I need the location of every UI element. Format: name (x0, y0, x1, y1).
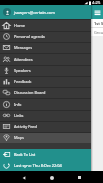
button[interactable]: Home (47, 173, 56, 182)
button[interactable]: Back (19, 173, 28, 182)
button[interactable]: Speakers (0, 65, 91, 76)
button[interactable]: Personal agenda (0, 31, 91, 42)
staticText: Info (14, 102, 22, 107)
staticText: Group Discussion (94, 30, 103, 35)
staticText: Activity Feed (14, 124, 37, 129)
button[interactable]: Recent apps (75, 173, 84, 182)
button[interactable]: Messages (0, 42, 91, 53)
button[interactable]: Links (0, 110, 91, 121)
button[interactable]: Open navigation drawer (93, 8, 102, 17)
staticText: Speakers (14, 68, 31, 73)
button[interactable]: Last sync: Thu 8:Dec 22:04 (0, 160, 91, 171)
staticText: Discussion Board (14, 90, 46, 95)
button[interactable]: Maps (0, 132, 91, 143)
button[interactable]: Attendees (0, 53, 91, 65)
button[interactable]: Info (0, 98, 91, 110)
staticText: Maps (14, 135, 24, 140)
button[interactable]: Activity Feed (0, 121, 91, 132)
staticText: Personal agenda (14, 34, 45, 39)
staticText: Back To List (14, 152, 36, 157)
button[interactable]: jsawyers@certain.com (0, 5, 91, 19)
staticText: 4:25 (92, 0, 101, 5)
staticText: Attendees (14, 57, 33, 62)
staticText: Messages (14, 45, 33, 50)
staticText: Last sync: Thu 8:Dec 22:04 (14, 163, 62, 168)
staticText: Home (14, 23, 26, 28)
staticText: Feedback (14, 79, 32, 84)
staticText: Links (14, 113, 24, 118)
staticText: jsawyers@certain.com (14, 10, 55, 15)
button[interactable]: Back To List (0, 149, 91, 160)
button[interactable]: Discussion Board (0, 87, 91, 98)
button[interactable]: Home (0, 19, 91, 31)
staticText: 1st Session: Introduction (94, 21, 103, 26)
button[interactable]: Feedback (0, 76, 91, 87)
